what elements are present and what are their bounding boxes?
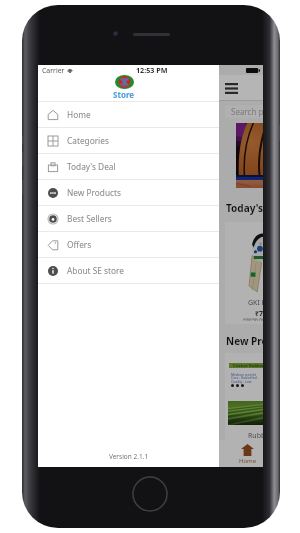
button[interactable]: GKI Kashmir Willow	[225, 222, 263, 324]
button[interactable]: Open navigation menu	[223, 79, 240, 96]
staticText: Home	[239, 457, 257, 465]
staticText: New Products	[67, 187, 121, 198]
staticText: New Products	[226, 334, 263, 348]
button[interactable]: Today's Deal	[38, 154, 219, 179]
button[interactable]	[236, 123, 263, 188]
button[interactable]: Categories	[38, 128, 219, 153]
staticText: Quality : Low	[231, 379, 252, 384]
staticText: Today's Deal	[67, 161, 116, 172]
staticText: 12:53 PM	[136, 65, 168, 75]
staticText: Store	[113, 89, 135, 100]
staticText: Home	[67, 109, 91, 120]
button[interactable]: Best Sellers	[38, 206, 219, 231]
button[interactable]: About SE store	[38, 258, 219, 283]
staticText: Cricket Rubber Mat	[233, 363, 263, 368]
button[interactable]: Search products	[225, 105, 263, 118]
staticText: Medium weight	[231, 372, 256, 377]
staticText: Rubber Mat	[248, 431, 263, 440]
button[interactable]: Home	[38, 102, 219, 127]
staticText: GKI Kashmir Willow	[248, 298, 263, 308]
button[interactable]: Cricket Rubber Mat	[225, 353, 263, 440]
staticText: Categories	[67, 135, 109, 146]
button[interactable]: New Products	[38, 180, 219, 205]
staticText: Best Sellers	[67, 213, 112, 224]
staticText: Version 2.1.1	[38, 452, 219, 461]
staticText: Today's Deal	[226, 201, 263, 215]
staticText: ₹7199.00	[255, 309, 263, 319]
staticText: About SE store	[67, 265, 124, 276]
staticText: ₹8636.00	[243, 316, 263, 321]
staticText: Offers	[67, 239, 92, 250]
button[interactable]: Offers	[38, 232, 219, 257]
staticText: Core : Rubbered	[231, 375, 257, 380]
button[interactable]: Home	[219, 440, 263, 467]
staticText: Carrier	[42, 66, 65, 75]
staticText: Search products	[231, 106, 263, 117]
